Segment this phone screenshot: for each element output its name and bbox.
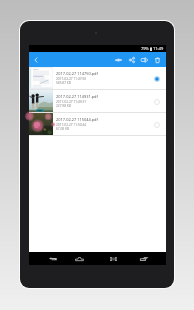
staticText: 227.98 KB bbox=[56, 104, 71, 108]
button[interactable]: Share bbox=[125, 52, 138, 67]
staticText: 2017-02-27 114750.pdf bbox=[56, 71, 98, 76]
staticText: 2017-02-27 114931.pdf bbox=[56, 94, 98, 99]
button[interactable]: Print bbox=[138, 52, 151, 67]
button[interactable]: 2017-02-27 114931.pdf bbox=[29, 90, 166, 113]
staticText: 585.87 KB bbox=[56, 81, 71, 85]
staticText: 79% bbox=[141, 46, 149, 51]
staticText: 2017-02-27 115044.pdf bbox=[56, 117, 98, 122]
button[interactable]: Screenshot bbox=[138, 252, 150, 265]
staticText: 2017-02-27 11:49:31 bbox=[56, 100, 87, 104]
staticText: 67.08 KB bbox=[56, 127, 70, 131]
button[interactable]: 2017-02-27 115044.pdf bbox=[29, 113, 166, 136]
staticText: 11:49 bbox=[153, 46, 164, 51]
button[interactable]: Delete bbox=[151, 52, 164, 67]
button[interactable]: View bbox=[112, 52, 125, 67]
staticText: 2017-02-27 11:50:44 bbox=[56, 123, 87, 127]
button[interactable]: Back bbox=[29, 52, 43, 67]
button[interactable]: Back bbox=[47, 252, 59, 265]
button[interactable]: Recent apps bbox=[107, 252, 119, 265]
button[interactable]: Home bbox=[73, 252, 85, 265]
button[interactable]: 2017-02-27 114750.pdf bbox=[29, 67, 166, 90]
staticText: 2017-02-27 11:47:50 bbox=[56, 77, 87, 81]
